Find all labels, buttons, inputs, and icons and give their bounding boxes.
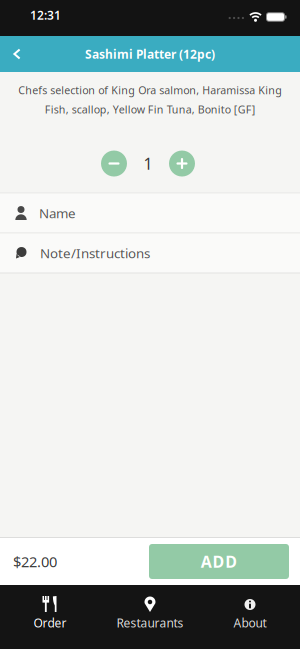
button[interactable]: Order: [0, 596, 100, 631]
button[interactable]: ADD: [149, 544, 289, 579]
staticText: $22.00: [13, 552, 57, 571]
staticText: ADD: [201, 551, 237, 572]
button[interactable]: Note/Instructions: [0, 233, 300, 272]
staticText: Sashimi Platter (12pc): [85, 46, 215, 62]
button[interactable]: Decrease quantity: [101, 150, 127, 176]
staticText: Note/Instructions: [40, 244, 150, 262]
button[interactable]: Back: [0, 36, 21, 71]
staticText: Name: [39, 204, 76, 222]
staticText: 1: [143, 153, 152, 174]
button[interactable]: About: [200, 596, 300, 631]
button[interactable]: Restaurants: [100, 596, 200, 631]
staticText: Chefs selection of King Ora salmon, Hara…: [18, 83, 282, 116]
staticText: About: [233, 615, 266, 631]
button[interactable]: Increase quantity: [169, 150, 195, 176]
staticText: Restaurants: [116, 615, 183, 631]
button[interactable]: Name: [0, 193, 300, 232]
staticText: 12:31: [30, 7, 61, 23]
staticText: Order: [33, 615, 66, 631]
